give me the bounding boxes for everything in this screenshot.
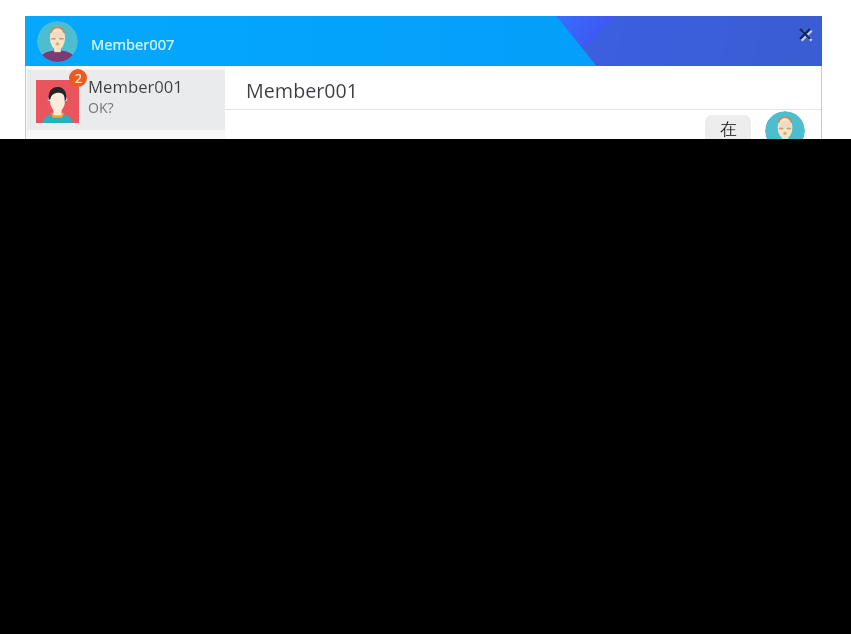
staticText: Member007 [91,34,175,54]
button[interactable]: Your profile [37,21,78,62]
button[interactable]: Member001 [225,66,822,109]
staticText: Member001 [88,75,183,98]
button[interactable]: Member007 avatar [765,111,805,151]
staticText: 2 [75,70,82,86]
button[interactable]: 在 [705,115,751,148]
staticText: Member001 [246,77,358,104]
staticText: 在 [720,119,737,140]
button[interactable]: 2 [27,70,225,130]
button[interactable]: Close window [787,18,823,47]
staticText: OK? [88,98,114,117]
